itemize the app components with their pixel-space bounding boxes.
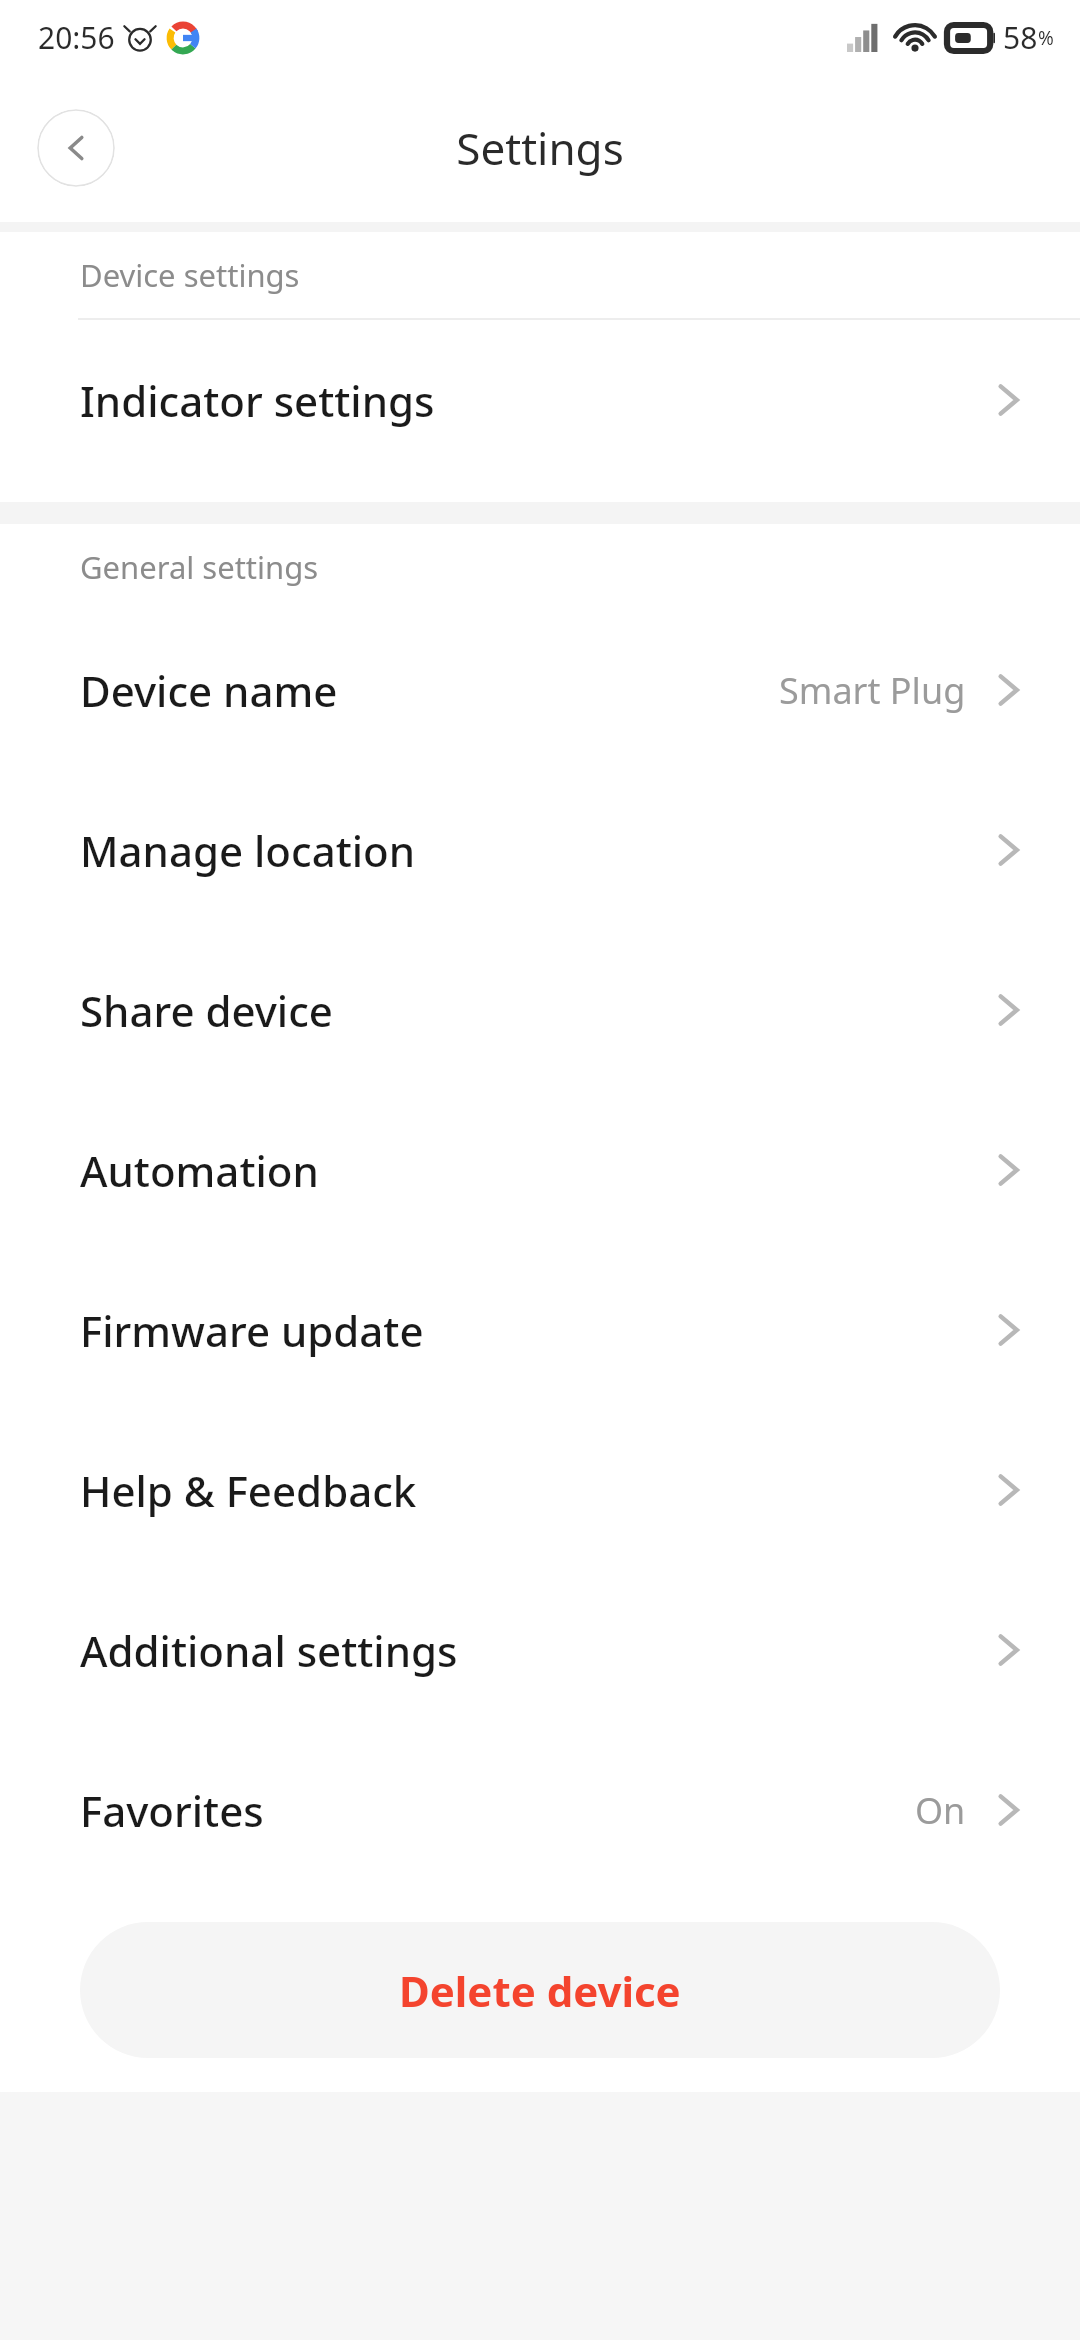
staticText: Help & Feedback — [80, 1462, 417, 1519]
button[interactable]: Firmware update — [0, 1250, 1080, 1410]
staticText: Smart Plug — [779, 666, 966, 715]
staticText: Firmware update — [80, 1302, 424, 1359]
staticText: Device name — [80, 662, 338, 719]
button[interactable]: Back — [37, 109, 115, 187]
button[interactable]: Manage location — [0, 770, 1080, 930]
button[interactable]: Device name — [0, 610, 1080, 770]
button[interactable]: Automation — [0, 1090, 1080, 1250]
staticText: Favorites — [80, 1782, 264, 1839]
staticText: Delete device — [399, 1962, 681, 2019]
staticText: % — [1038, 25, 1054, 51]
staticText: Settings — [456, 118, 624, 178]
button[interactable]: Indicator settings — [0, 320, 1080, 480]
staticText: Indicator settings — [80, 372, 435, 429]
button[interactable]: Delete device — [80, 1922, 1000, 2058]
staticText: Manage location — [80, 822, 416, 879]
staticText: Device settings — [80, 254, 300, 296]
staticText: On — [915, 1786, 966, 1835]
staticText: General settings — [80, 546, 319, 588]
button[interactable]: Favorites — [0, 1730, 1080, 1890]
staticText: Automation — [80, 1142, 319, 1199]
staticText: 58 — [1003, 17, 1038, 58]
button[interactable]: Help & Feedback — [0, 1410, 1080, 1570]
staticText: Share device — [80, 982, 333, 1039]
button[interactable]: Share device — [0, 930, 1080, 1090]
staticText: 20:56 — [38, 17, 115, 58]
button[interactable]: Additional settings — [0, 1570, 1080, 1730]
staticText: Additional settings — [80, 1622, 458, 1679]
